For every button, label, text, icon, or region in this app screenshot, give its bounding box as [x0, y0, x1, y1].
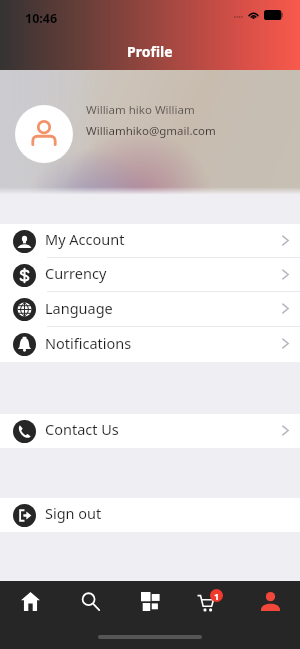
- staticText: William hiko William: [86, 102, 195, 118]
- button[interactable]: My Account: [0, 224, 300, 258]
- staticText: Notifications: [45, 333, 132, 353]
- staticText: Williamhiko@gmail.com: [86, 123, 216, 139]
- button[interactable]: Currency: [0, 258, 300, 292]
- button[interactable]: Language: [0, 292, 300, 327]
- staticText: 1: [214, 590, 220, 602]
- button[interactable]: Cart: [180, 581, 240, 621]
- button[interactable]: Contact Us: [0, 414, 300, 448]
- staticText: Sign out: [45, 503, 102, 523]
- staticText: Contact Us: [45, 419, 119, 439]
- staticText: My Account: [45, 229, 125, 249]
- button[interactable]: Search: [60, 581, 120, 621]
- button[interactable]: Sign out: [0, 498, 300, 532]
- staticText: 10:46: [25, 10, 58, 27]
- staticText: Currency: [45, 263, 107, 283]
- button[interactable]: Categories: [120, 581, 180, 621]
- button[interactable]: Notifications: [0, 327, 300, 362]
- button[interactable]: Profile: [240, 581, 300, 621]
- staticText: Profile: [127, 42, 173, 61]
- button[interactable]: Home: [0, 581, 60, 621]
- staticText: Language: [45, 298, 113, 318]
